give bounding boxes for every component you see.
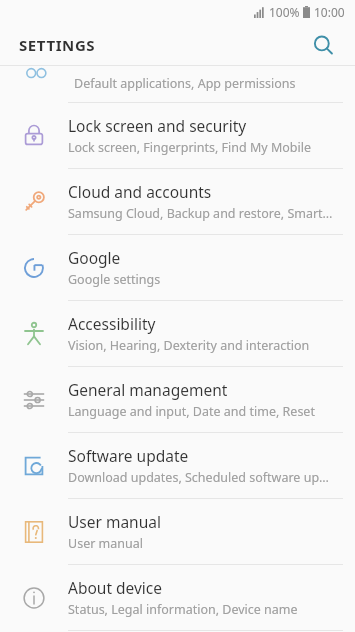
button[interactable]: About device — [0, 565, 355, 630]
staticText: Google — [68, 247, 121, 268]
button[interactable]: Search — [305, 27, 341, 63]
staticText: 100% — [269, 4, 300, 20]
button[interactable]: General management — [0, 367, 355, 432]
staticText: Default applications, App permissions — [74, 75, 296, 92]
staticText: Lock screen, Fingerprints, Find My Mobil… — [68, 139, 312, 156]
staticText: 10:00 — [314, 4, 345, 20]
button[interactable]: Lock screen and security — [0, 103, 355, 168]
staticText: User manual — [68, 535, 143, 552]
staticText: General management — [68, 379, 228, 400]
staticText: About device — [68, 577, 163, 598]
button[interactable]: Accessibility — [0, 301, 355, 366]
staticText: Software update — [68, 445, 189, 466]
button[interactable]: Software update — [0, 433, 355, 498]
staticText: Language and input, Date and time, Reset — [68, 403, 315, 420]
staticText: SETTINGS — [19, 35, 96, 55]
button[interactable]: User manual — [0, 499, 355, 564]
staticText: Lock screen and security — [68, 115, 247, 136]
staticText: User manual — [68, 511, 161, 532]
staticText: Google settings — [68, 271, 161, 288]
staticText: Accessibility — [68, 313, 156, 334]
staticText: Status, Legal information, Device name — [68, 601, 298, 618]
button[interactable]: Default applications, App permissions — [0, 66, 355, 102]
button[interactable]: Cloud and accounts — [0, 169, 355, 234]
staticText: Samsung Cloud, Backup and restore, Smart… — [68, 205, 333, 222]
staticText: Cloud and accounts — [68, 181, 212, 202]
staticText: Download updates, Scheduled software up… — [68, 469, 329, 486]
button[interactable]: Google — [0, 235, 355, 300]
staticText: Vision, Hearing, Dexterity and interacti… — [68, 337, 310, 354]
